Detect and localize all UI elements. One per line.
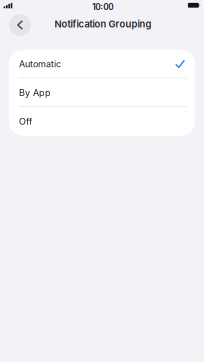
- staticText: Off: [19, 116, 32, 127]
- staticText: 10:00: [92, 2, 113, 12]
- staticText: Notification Grouping: [54, 18, 151, 30]
- button[interactable]: Off: [9, 107, 195, 136]
- button[interactable]: By App: [9, 78, 195, 107]
- button[interactable]: Automatic: [9, 50, 195, 78]
- staticText: Automatic: [19, 59, 61, 70]
- staticText: By App: [19, 87, 51, 98]
- button[interactable]: Back: [9, 14, 31, 36]
